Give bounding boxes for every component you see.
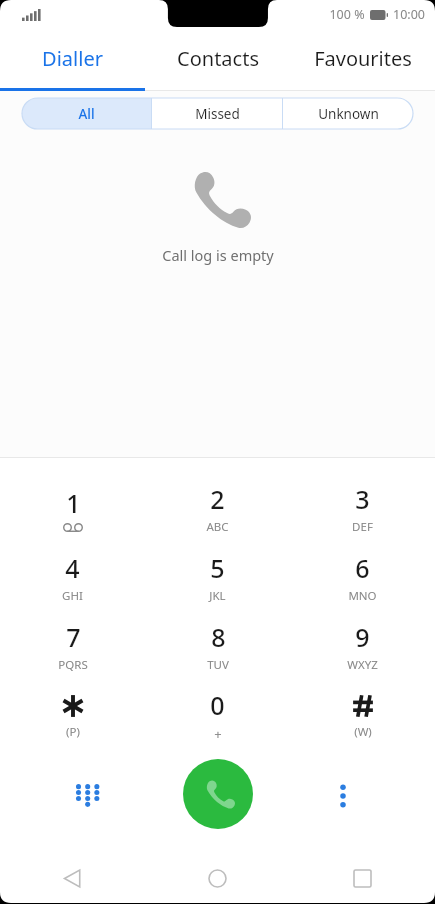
staticText: ABC bbox=[206, 519, 229, 535]
button[interactable]: 2 bbox=[145, 474, 290, 543]
button[interactable]: Dialler bbox=[0, 29, 145, 91]
button[interactable]: Unknown bbox=[283, 98, 413, 129]
staticText: 8 bbox=[211, 620, 226, 654]
staticText: (W) bbox=[354, 724, 372, 740]
staticText: 0 bbox=[210, 688, 225, 722]
button[interactable]: 4 bbox=[0, 543, 145, 612]
button[interactable]: Call bbox=[183, 759, 253, 829]
button[interactable]: Dialpad bbox=[62, 772, 110, 820]
staticText: 1 bbox=[66, 486, 81, 520]
staticText: 10:00 bbox=[393, 6, 425, 23]
staticText: (P) bbox=[66, 724, 80, 740]
staticText: 3 bbox=[355, 482, 370, 516]
button[interactable]: 1 bbox=[0, 474, 145, 543]
staticText: TUV bbox=[207, 657, 229, 673]
staticText: WXYZ bbox=[347, 657, 378, 673]
button[interactable]: 5 bbox=[145, 543, 290, 612]
staticText: GHI bbox=[62, 588, 83, 604]
button[interactable]: 7 bbox=[0, 612, 145, 681]
staticText: PQRS bbox=[58, 657, 88, 673]
button[interactable]: Home bbox=[145, 853, 290, 903]
button[interactable]: Recent apps bbox=[290, 853, 435, 903]
button[interactable]: (P) bbox=[0, 681, 145, 750]
button[interactable]: 6 bbox=[290, 543, 435, 612]
staticText: DEF bbox=[352, 519, 373, 535]
button[interactable]: All bbox=[22, 98, 151, 129]
staticText: 4 bbox=[65, 551, 80, 585]
staticText: Missed bbox=[195, 105, 240, 123]
staticText: 7 bbox=[66, 620, 81, 654]
staticText: + bbox=[214, 725, 222, 743]
button[interactable]: Favourites bbox=[290, 29, 435, 91]
staticText: JKL bbox=[209, 588, 226, 604]
staticText: Call log is empty bbox=[162, 245, 274, 265]
staticText: Contacts bbox=[177, 45, 259, 72]
button[interactable]: 9 bbox=[290, 612, 435, 681]
button[interactable]: Back bbox=[0, 853, 145, 903]
button[interactable]: 3 bbox=[290, 474, 435, 543]
button[interactable]: Missed bbox=[152, 98, 282, 129]
button[interactable]: (W) bbox=[290, 681, 435, 750]
staticText: Unknown bbox=[318, 105, 379, 123]
staticText: 100 % bbox=[329, 6, 365, 23]
staticText: 6 bbox=[355, 551, 370, 585]
staticText: MNO bbox=[348, 588, 377, 604]
button[interactable]: Contacts bbox=[145, 29, 290, 91]
staticText: 2 bbox=[210, 482, 225, 516]
staticText: 9 bbox=[355, 620, 370, 654]
staticText: Dialler bbox=[42, 45, 103, 72]
staticText: 5 bbox=[210, 551, 225, 585]
staticText: Favourites bbox=[314, 45, 412, 72]
button[interactable]: 8 bbox=[145, 612, 290, 681]
button[interactable]: More options bbox=[319, 772, 367, 820]
button[interactable]: 0 bbox=[145, 681, 290, 750]
staticText: All bbox=[78, 105, 95, 123]
